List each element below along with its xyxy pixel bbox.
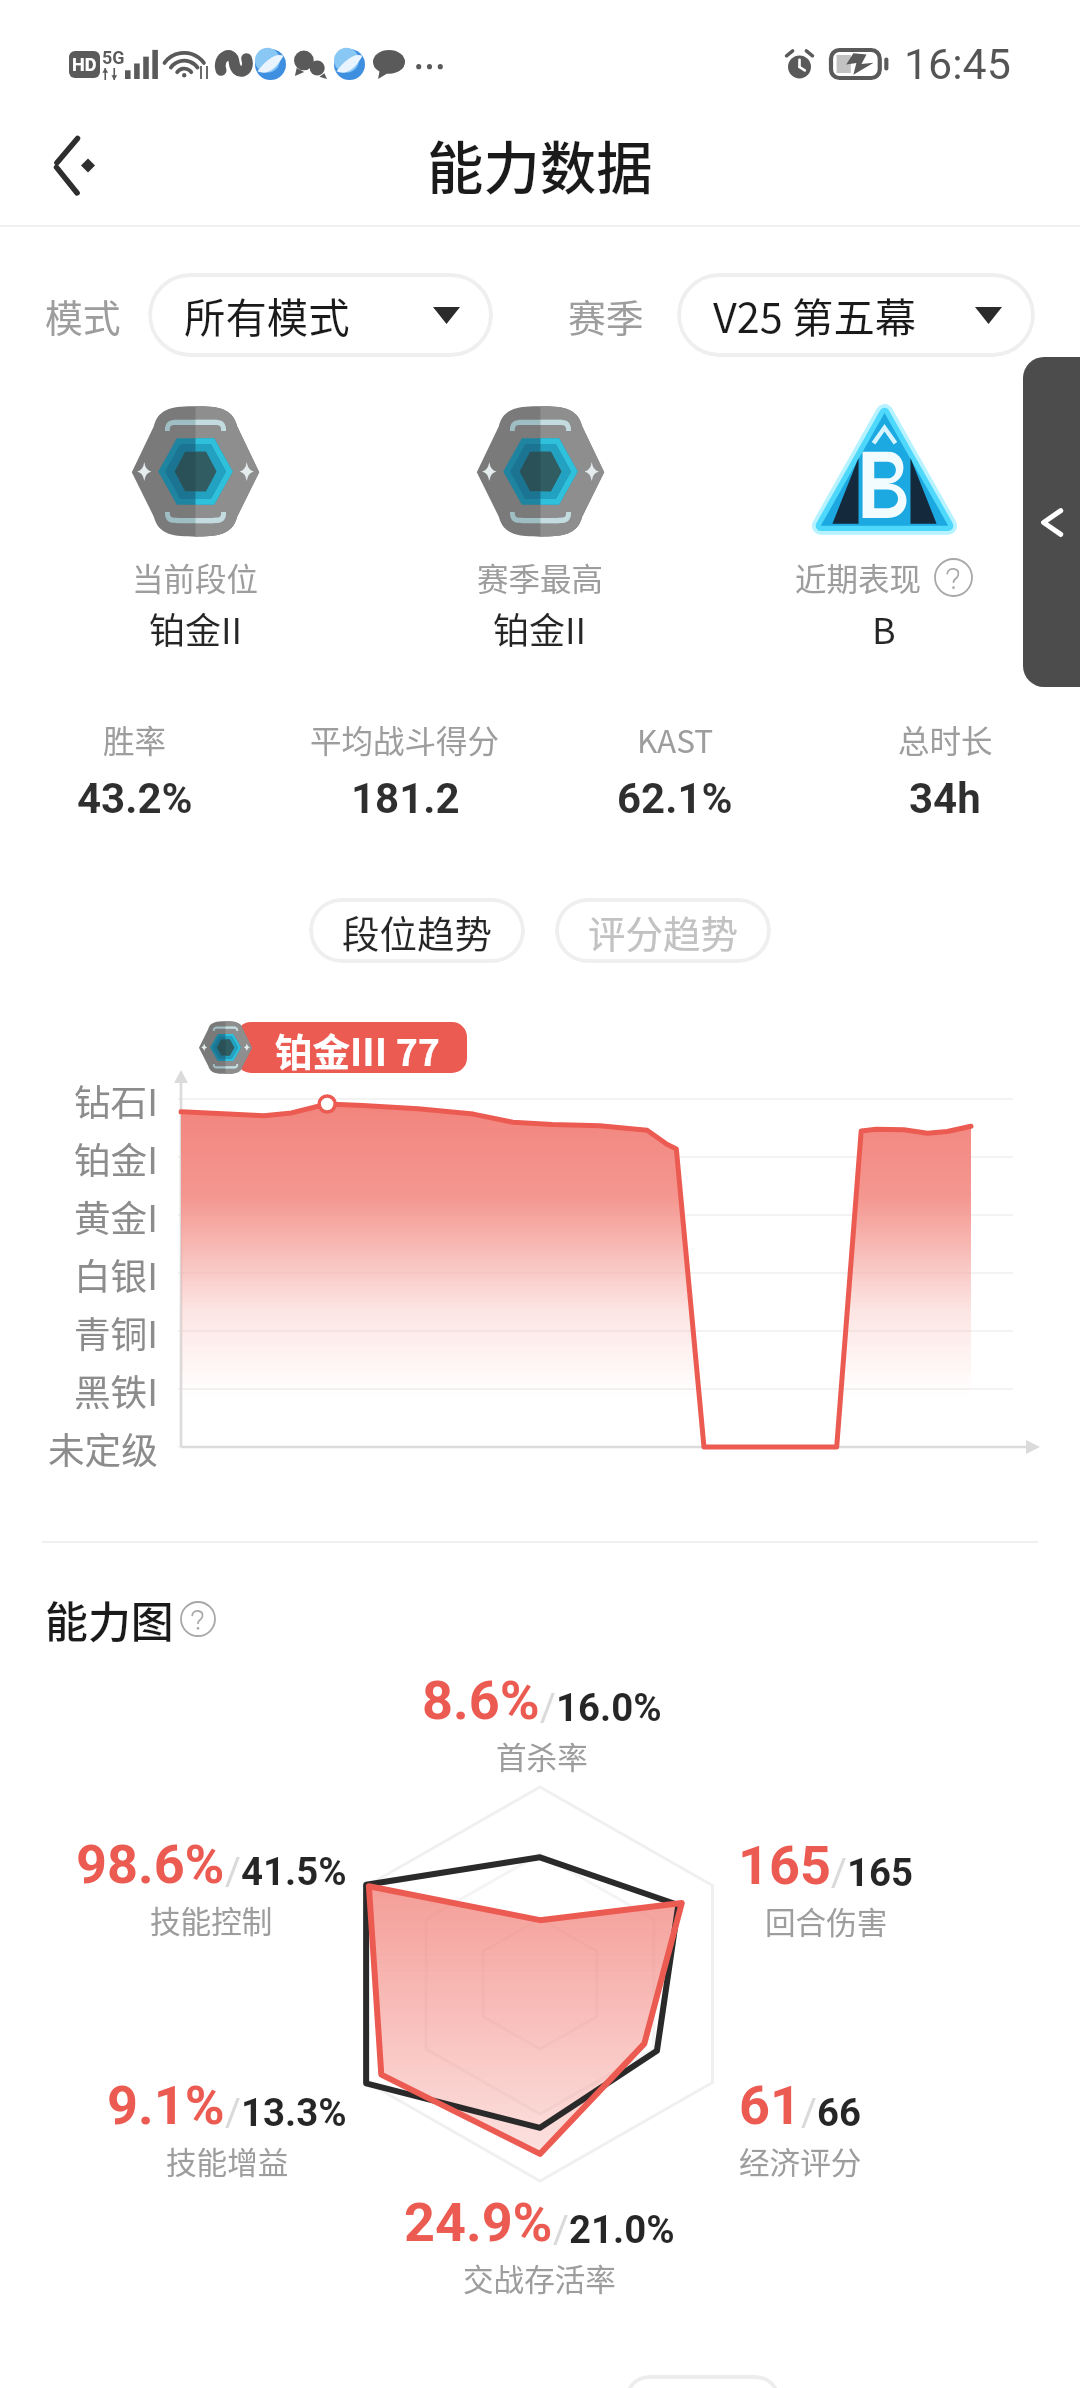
staticText: 技能控制 bbox=[150, 1898, 273, 1942]
staticText: 能力图 bbox=[45, 1588, 174, 1650]
staticText: 铂金II bbox=[149, 602, 243, 654]
staticText: 总时长 bbox=[898, 716, 993, 762]
staticText: / bbox=[553, 2207, 569, 2252]
staticText: 16.0% bbox=[556, 1685, 662, 1730]
staticText: 黑铁I bbox=[74, 1364, 158, 1417]
staticText: 当前段位 bbox=[132, 554, 259, 600]
staticText: 胜率 bbox=[103, 716, 167, 762]
staticText: 未定级 bbox=[48, 1422, 158, 1475]
staticText: / bbox=[225, 1849, 241, 1894]
staticText: 62.1% bbox=[617, 774, 733, 823]
staticText: 青铜I bbox=[74, 1306, 158, 1359]
button[interactable]: 评分趋势 bbox=[555, 898, 771, 963]
staticText: 41.5% bbox=[241, 1849, 347, 1894]
staticText: 首杀率 bbox=[496, 1734, 588, 1778]
staticText: 赛季 bbox=[568, 288, 644, 343]
staticText: 模式 bbox=[45, 288, 121, 343]
staticText: 16:45 bbox=[904, 39, 1011, 89]
staticText: 43.2% bbox=[77, 774, 193, 823]
staticText: / bbox=[801, 2090, 817, 2135]
staticText: 所有模式 bbox=[184, 285, 350, 345]
staticText: 经济评分 bbox=[739, 2139, 862, 2183]
staticText: 165 bbox=[738, 1834, 831, 1897]
staticText: 5G bbox=[102, 47, 125, 68]
staticText: 61 bbox=[739, 2074, 801, 2137]
staticText: 24.9% bbox=[404, 2191, 553, 2254]
staticText: KAST bbox=[637, 716, 714, 762]
staticText: 评分趋势 bbox=[588, 904, 738, 958]
button[interactable]: Back bbox=[9, 108, 141, 222]
staticText: 技能增益 bbox=[166, 2139, 289, 2183]
button[interactable]: Expand side panel bbox=[1023, 357, 1080, 687]
staticText: 近期表现 bbox=[795, 554, 922, 600]
button[interactable]: 所有模式 bbox=[148, 273, 493, 357]
button[interactable]: V25 第五幕 bbox=[677, 273, 1035, 357]
button[interactable] bbox=[625, 2375, 780, 2388]
staticText: / bbox=[540, 1685, 556, 1730]
staticText: 铂金II bbox=[493, 602, 587, 654]
staticText: 白银I bbox=[74, 1248, 158, 1301]
staticText: 165 bbox=[847, 1850, 914, 1895]
staticText: HD bbox=[72, 54, 97, 75]
staticText: B bbox=[872, 602, 896, 654]
staticText: 交战存活率 bbox=[463, 2256, 616, 2300]
staticText: / bbox=[831, 1850, 847, 1895]
staticText: 13.3% bbox=[241, 2090, 347, 2135]
staticText: 赛季最高 bbox=[477, 554, 604, 600]
staticText: 铂金I bbox=[74, 1132, 158, 1185]
staticText: 铂金III 77 bbox=[275, 1022, 440, 1073]
staticText: 98.6% bbox=[76, 1833, 225, 1896]
staticText: 段位趋势 bbox=[342, 904, 492, 958]
staticText: 平均战斗得分 bbox=[310, 716, 500, 762]
staticText: V25 第五幕 bbox=[713, 285, 917, 345]
staticText: 181.2 bbox=[351, 774, 460, 823]
staticText: / bbox=[225, 2090, 241, 2135]
staticText: 回合伤害 bbox=[765, 1899, 888, 1943]
staticText: 9.1% bbox=[107, 2074, 225, 2137]
staticText: 能力数据 bbox=[427, 124, 653, 206]
button[interactable]: 段位趋势 bbox=[309, 898, 525, 963]
staticText: 8.6% bbox=[422, 1669, 540, 1732]
staticText: 21.0% bbox=[569, 2207, 675, 2252]
staticText: 黄金I bbox=[74, 1190, 158, 1243]
staticText: 66 bbox=[817, 2090, 862, 2135]
staticText: 钻石I bbox=[74, 1074, 158, 1127]
staticText: 34h bbox=[909, 774, 981, 823]
